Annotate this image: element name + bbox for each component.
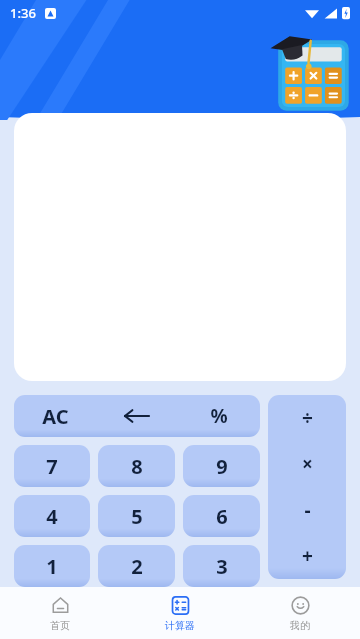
button[interactable]: -: [268, 487, 346, 533]
staticText: -: [304, 497, 311, 523]
staticText: 首页: [50, 619, 70, 632]
staticText: 7: [46, 453, 58, 480]
staticText: 我的: [290, 619, 310, 632]
button[interactable]: 1: [14, 545, 90, 587]
staticText: 2: [131, 553, 143, 580]
button[interactable]: AC: [14, 395, 96, 437]
button[interactable]: Backspace: [96, 395, 178, 437]
button[interactable]: 3: [183, 545, 260, 587]
button[interactable]: +: [268, 533, 346, 579]
staticText: 1:36: [10, 4, 36, 22]
button[interactable]: ÷: [268, 395, 346, 441]
staticText: 9: [216, 453, 228, 480]
button[interactable]: 4: [14, 495, 90, 537]
staticText: 计算器: [165, 619, 195, 632]
button[interactable]: 我的: [240, 587, 360, 639]
button[interactable]: 9: [183, 445, 260, 487]
button[interactable]: 5: [98, 495, 175, 537]
button[interactable]: 8: [98, 445, 175, 487]
button[interactable]: 计算器: [120, 587, 240, 639]
staticText: +: [302, 543, 313, 569]
button[interactable]: 6: [183, 495, 260, 537]
staticText: 3: [216, 553, 228, 580]
staticText: 8: [131, 453, 143, 480]
button[interactable]: %: [178, 395, 260, 437]
staticText: AC: [42, 403, 69, 430]
staticText: %: [210, 403, 228, 429]
staticText: ×: [302, 451, 313, 477]
button[interactable]: 首页: [0, 587, 120, 639]
button[interactable]: ×: [268, 441, 346, 487]
staticText: 5: [131, 503, 143, 530]
staticText: ÷: [302, 405, 313, 431]
staticText: 1: [46, 553, 58, 580]
staticText: 4: [46, 503, 58, 530]
button[interactable]: 7: [14, 445, 90, 487]
button[interactable]: 2: [98, 545, 175, 587]
staticText: 6: [216, 503, 228, 530]
